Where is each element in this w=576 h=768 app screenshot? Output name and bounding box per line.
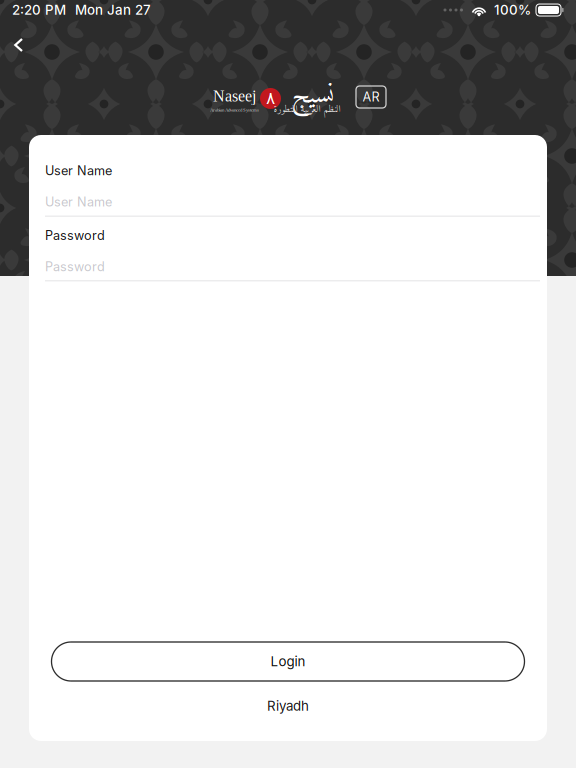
staticText: Riyadh xyxy=(267,698,309,714)
staticText: النظم العربية المتطورة xyxy=(273,101,340,118)
staticText: AR xyxy=(362,89,379,105)
staticText: Password xyxy=(45,259,105,274)
staticText: User Name xyxy=(45,163,112,178)
button[interactable]: Back xyxy=(5,26,33,64)
staticText: Arabian Advanced Systems xyxy=(210,107,259,113)
staticText: Naseej xyxy=(213,87,256,105)
staticText: 100% xyxy=(494,2,531,18)
staticText: ٨ xyxy=(266,88,275,108)
staticText: Login xyxy=(270,653,305,669)
staticText: 2:20 PM xyxy=(12,2,66,18)
staticText: User Name xyxy=(45,194,112,210)
staticText: Password xyxy=(45,228,105,243)
button[interactable]: AR xyxy=(356,86,386,108)
staticText: نسيج xyxy=(291,73,334,119)
button[interactable]: Login xyxy=(51,642,524,681)
staticText: Mon Jan 27 xyxy=(75,2,151,18)
